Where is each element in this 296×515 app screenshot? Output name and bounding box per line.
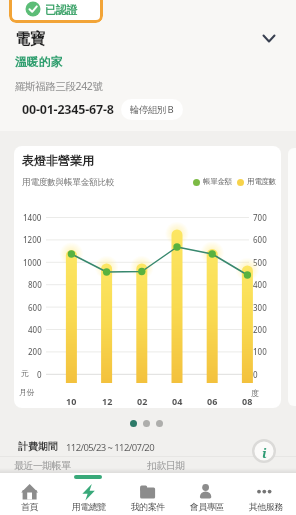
staticText: 最近一期帳單	[14, 459, 71, 472]
button[interactable]	[14, 146, 281, 408]
staticText: 用電度數	[247, 177, 276, 186]
staticText: i	[262, 444, 267, 462]
staticText: 用電總覽	[72, 501, 106, 512]
button[interactable]	[252, 439, 276, 463]
staticText: 12	[102, 395, 113, 406]
staticText: 06	[207, 395, 218, 406]
staticText: 600	[28, 302, 42, 313]
button[interactable]	[9, 0, 103, 23]
staticText: 用電度數與帳單金額比較	[22, 177, 115, 188]
staticText: 1200	[23, 234, 42, 245]
staticText: 度	[251, 388, 259, 398]
staticText: 02	[137, 395, 148, 406]
staticText: 已認證	[45, 3, 78, 17]
staticText: 700	[253, 212, 267, 223]
button[interactable]: 輪停組別 B	[121, 99, 183, 120]
staticText: 400	[253, 279, 267, 290]
staticText: 其他服務	[249, 501, 283, 512]
staticText: 首頁	[21, 501, 38, 512]
staticText: 100	[253, 346, 267, 357]
button[interactable]: 會員專區	[177, 473, 236, 515]
staticText: 10	[66, 395, 77, 406]
staticText: 00-01-2345-67-8	[22, 101, 114, 118]
staticText: 500	[253, 257, 267, 268]
staticText: 帳單金額	[203, 177, 232, 186]
staticText: 1000	[23, 257, 42, 268]
staticText: 200	[28, 346, 42, 357]
button[interactable]: 其他服務	[236, 473, 295, 515]
staticText: 元	[21, 368, 29, 378]
staticText: 112/08/10	[14, 471, 68, 486]
staticText: 0	[37, 369, 42, 380]
staticText: 1400	[23, 212, 42, 223]
staticText: 200	[253, 324, 267, 335]
staticText: 表燈非營業用	[22, 153, 94, 168]
staticText: 羅斯福路三段242號	[15, 79, 103, 93]
staticText: 扣款日期	[147, 459, 185, 472]
staticText: 電寶	[15, 30, 45, 49]
staticText: 08	[242, 395, 253, 406]
staticText: 我的案件	[131, 501, 165, 512]
staticText: 月份	[19, 387, 35, 397]
staticText: 0	[253, 369, 258, 380]
staticText: 800	[28, 279, 42, 290]
staticText: 會員專區	[190, 501, 224, 512]
staticText: 溫暖的家	[15, 54, 63, 69]
staticText: 04	[172, 395, 183, 406]
staticText: 600	[253, 234, 267, 245]
staticText: 400	[28, 324, 42, 335]
button[interactable]: 首頁	[0, 473, 59, 515]
staticText: 112/05/23 ~ 112/07/20	[66, 441, 154, 454]
staticText: 112/08/15	[147, 471, 201, 486]
button[interactable]: 我的案件	[118, 473, 177, 515]
staticText: 計費期間	[18, 440, 58, 453]
button[interactable]: 用電總覽	[59, 473, 118, 515]
staticText: 輪停組別 B	[130, 103, 174, 116]
button[interactable]	[0, 28, 296, 52]
staticText: 300	[253, 302, 267, 313]
